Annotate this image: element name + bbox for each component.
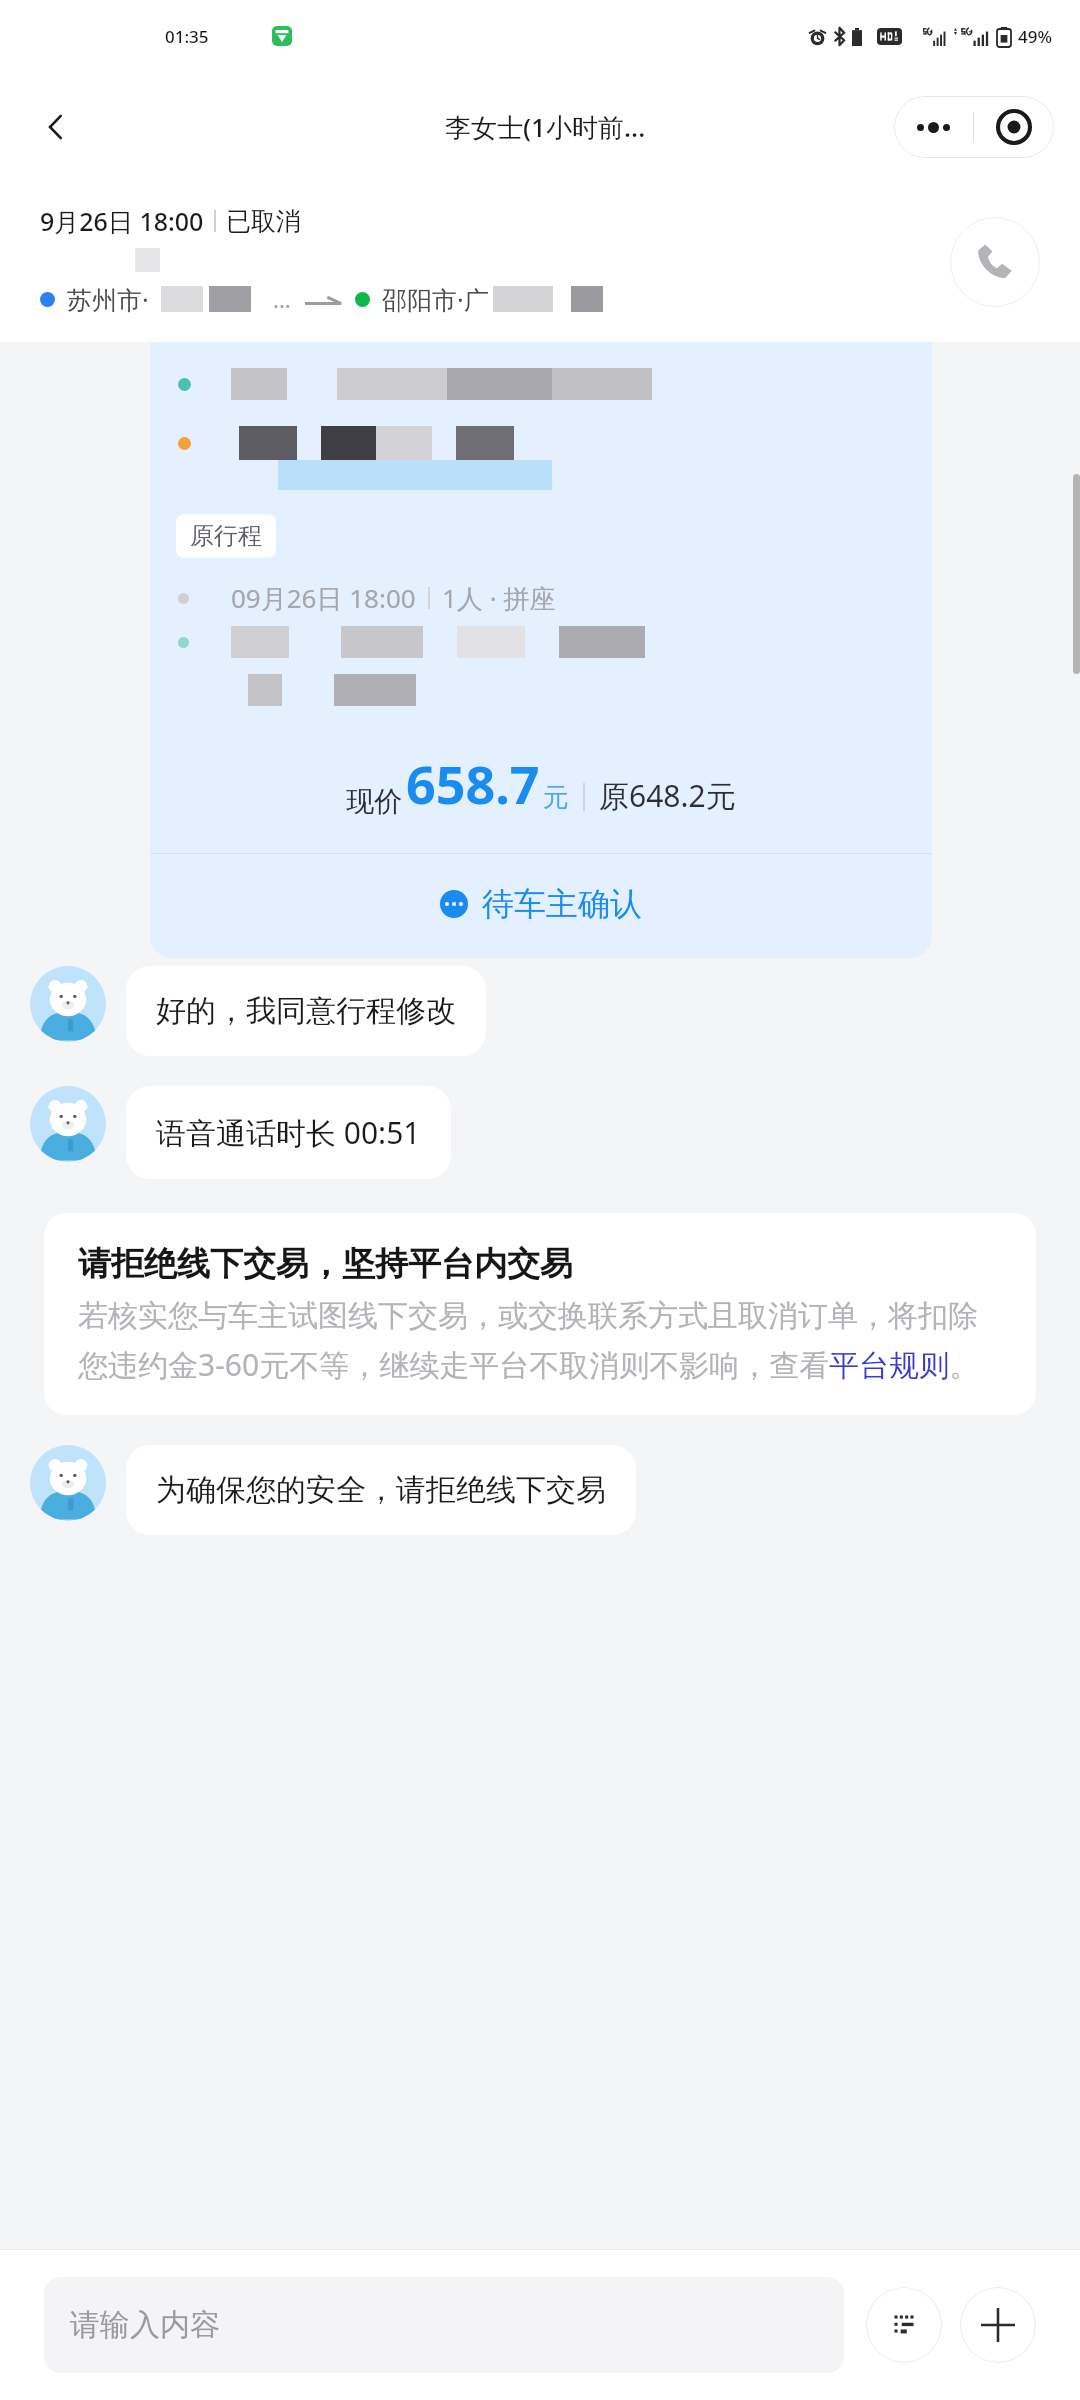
- staticText: 01:35: [165, 25, 209, 48]
- staticText: 原648.2元: [599, 775, 736, 816]
- staticText: 好的，我同意行程修改: [156, 992, 456, 1030]
- button[interactable]: 待车主确认: [150, 854, 932, 954]
- button[interactable]: Keyboard: [866, 2287, 942, 2363]
- button[interactable]: 请拒绝线下交易，坚持平台内交易: [44, 1213, 1036, 1415]
- staticText: 658.7: [406, 748, 540, 819]
- button[interactable]: More options: [894, 96, 973, 158]
- staticText: 原行程: [190, 521, 262, 551]
- button[interactable]: Call: [950, 217, 1040, 307]
- button[interactable]: 原行程: [150, 342, 932, 958]
- staticText: 李女士(1小时前...: [445, 109, 646, 145]
- button[interactable]: Back: [28, 99, 84, 155]
- button[interactable]: 为确保您的安全，请拒绝线下交易: [126, 1445, 636, 1535]
- staticText: 9月26日 18:00: [40, 204, 204, 238]
- staticText: 已取消: [226, 206, 301, 237]
- staticText: 待车主确认: [482, 884, 642, 924]
- staticText: 请拒绝线下交易，坚持平台内交易: [78, 1243, 573, 1285]
- button[interactable]: Record: [974, 96, 1054, 158]
- staticText: 为确保您的安全，请拒绝线下交易: [156, 1471, 606, 1509]
- staticText: 请输入内容: [70, 2306, 220, 2344]
- staticText: ...: [273, 284, 291, 314]
- staticText: 09月26日 18:00: [231, 580, 416, 616]
- staticText: 若核实您与车主试图线下交易，或交换联系方式且取消订单，将扣除您违约金3-60元不…: [78, 1297, 1002, 1385]
- staticText: 1人 · 拼座: [442, 580, 556, 616]
- button[interactable]: 语音通话时长 00:51: [126, 1086, 451, 1179]
- staticText: 元: [543, 781, 569, 814]
- staticText: 苏州市·: [67, 282, 149, 316]
- staticText: 邵阳市·广: [382, 282, 489, 316]
- staticText: 语音通话时长 00:51: [156, 1112, 421, 1153]
- staticText: 现价: [346, 784, 402, 819]
- button[interactable]: 好的，我同意行程修改: [126, 966, 486, 1056]
- button[interactable]: Add: [960, 2287, 1036, 2363]
- button[interactable]: 请输入内容: [44, 2277, 844, 2373]
- staticText: 49%: [1018, 25, 1052, 48]
